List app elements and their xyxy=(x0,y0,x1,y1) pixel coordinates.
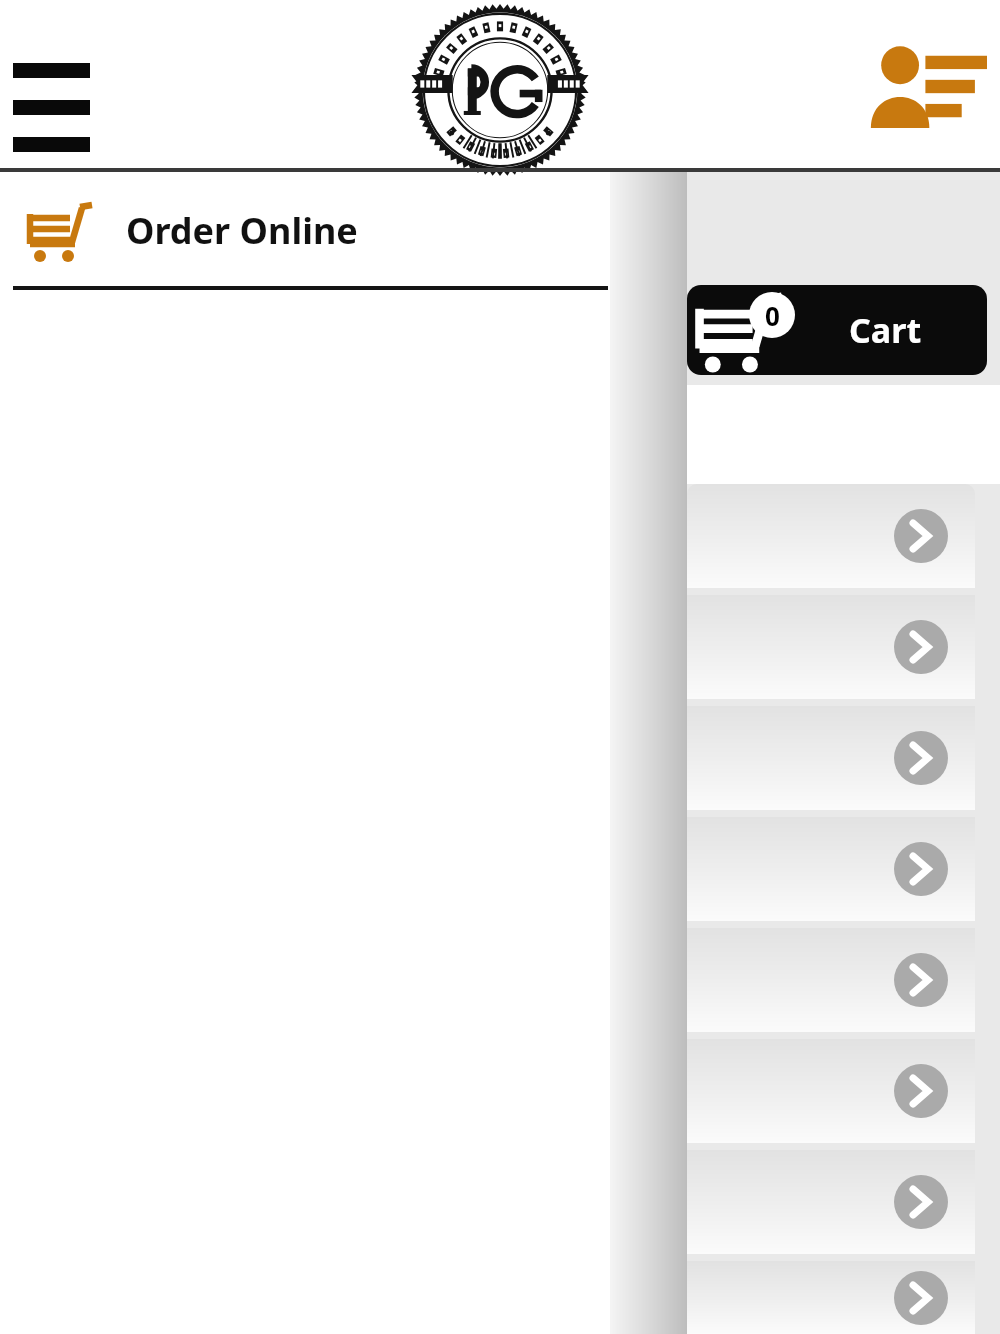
button[interactable] xyxy=(687,595,975,699)
button[interactable] xyxy=(687,484,975,588)
button[interactable]: Account xyxy=(877,42,987,128)
button[interactable] xyxy=(687,706,975,810)
button[interactable] xyxy=(687,1039,975,1143)
button[interactable] xyxy=(687,1150,975,1254)
staticText: 0 xyxy=(765,298,780,333)
staticText: Order Online xyxy=(126,206,358,255)
button[interactable]: Order Online xyxy=(0,172,610,288)
button[interactable]: Pizza Gourmet Restaurant logo xyxy=(414,4,586,176)
button[interactable] xyxy=(687,817,975,921)
staticText: Cart xyxy=(849,307,922,353)
button[interactable] xyxy=(687,928,975,1032)
button[interactable] xyxy=(687,1261,975,1334)
button[interactable]: Menu xyxy=(8,40,98,132)
button[interactable]: 0 xyxy=(687,285,987,375)
